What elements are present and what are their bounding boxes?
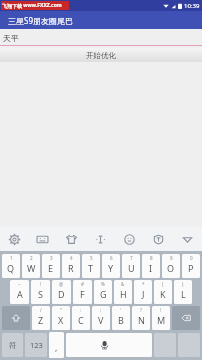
staticText: Q (7, 262, 15, 274)
staticText: 5 (90, 255, 93, 261)
button[interactable]: ! (152, 306, 170, 330)
staticText: ? (140, 307, 142, 313)
staticText: ( (162, 281, 164, 287)
button[interactable]: Emoji (115, 227, 144, 251)
staticText: F (80, 288, 85, 300)
button[interactable]: Theme (57, 227, 86, 251)
button[interactable]: % (94, 280, 112, 304)
button[interactable]: 123 (25, 333, 47, 357)
button[interactable]: ! (31, 280, 50, 304)
staticText: 0 (190, 255, 193, 261)
staticText: ~ (18, 281, 21, 287)
button[interactable]: ( (154, 280, 172, 304)
staticText: 开始优化 (86, 51, 116, 60)
staticText: & (121, 281, 125, 287)
staticText: U (128, 262, 135, 274)
button[interactable]: Cursor (86, 227, 115, 251)
button[interactable]: ~ (10, 280, 29, 304)
staticText: G (100, 288, 107, 300)
button[interactable]: # (73, 280, 92, 304)
button[interactable]: 7 (122, 254, 140, 278)
button[interactable]: Settings (0, 227, 28, 251)
staticText: X (58, 314, 64, 326)
button[interactable]: 开始优化 (0, 48, 202, 62)
button[interactable]: Shift (2, 306, 30, 330)
button[interactable]: 符 (2, 333, 23, 357)
button[interactable]: 2 (22, 254, 40, 278)
button[interactable]: ; (92, 306, 110, 330)
staticText: R (68, 262, 74, 274)
staticText: 8 (150, 255, 153, 261)
staticText: 2 (30, 255, 33, 261)
button[interactable]: , (49, 332, 64, 358)
button[interactable]: * (134, 280, 152, 304)
staticText: " (60, 307, 62, 313)
button[interactable]: 4 (62, 254, 80, 278)
staticText: ! (40, 281, 42, 287)
staticText: W (27, 262, 36, 274)
button[interactable]: 5 (82, 254, 100, 278)
button[interactable]: : (72, 306, 90, 330)
button[interactable]: ) (174, 280, 192, 304)
button[interactable]: @ (52, 280, 71, 304)
staticText: N (138, 314, 145, 326)
staticText: 三星S9朋友圈尾巴 (8, 15, 73, 26)
button[interactable]: ? (132, 306, 150, 330)
staticText: ; (100, 307, 102, 313)
button[interactable]: 1 (2, 254, 20, 278)
button[interactable]: 3 (42, 254, 60, 278)
button[interactable]: 8 (142, 254, 160, 278)
button[interactable]: Keyboard (28, 227, 57, 251)
staticText: * (142, 281, 145, 287)
staticText: ' (120, 307, 122, 313)
staticText: V (98, 314, 104, 326)
button[interactable]: Hide (173, 227, 202, 251)
button[interactable]: Space, voice input (66, 333, 152, 357)
staticText: E (48, 262, 54, 274)
staticText: L (181, 288, 186, 300)
staticText: K (160, 288, 166, 300)
button[interactable]: Backspace (172, 306, 200, 330)
staticText: H (120, 288, 127, 300)
button[interactable]: Translate (144, 227, 173, 251)
button[interactable]: 6 (102, 254, 120, 278)
staticText: 天平 (3, 33, 19, 43)
staticText: % (101, 281, 105, 287)
staticText: P (188, 262, 194, 274)
staticText: 6 (110, 255, 113, 261)
staticText: O (167, 262, 175, 274)
button[interactable]: 天平 (0, 31, 202, 45)
button[interactable]: 0 (182, 254, 200, 278)
staticText: 10:39 (184, 2, 200, 10)
staticText: @ (59, 281, 64, 287)
staticText: I (149, 262, 153, 274)
staticText: ) (182, 281, 184, 287)
staticText: 123 (30, 340, 43, 350)
button[interactable]: & (114, 280, 132, 304)
staticText: ! (160, 307, 162, 313)
staticText: 7 (130, 255, 133, 261)
staticText: www.FXXZ.com (22, 2, 62, 9)
staticText: D (58, 288, 65, 300)
staticText: : (80, 307, 82, 313)
staticText: 4 (70, 255, 73, 261)
staticText: B (118, 314, 124, 326)
staticText: J (142, 288, 145, 300)
staticText: C (78, 314, 84, 326)
staticText: , (55, 341, 58, 353)
staticText: 3 (50, 255, 53, 261)
staticText: Z (38, 314, 44, 326)
button[interactable]: 9 (162, 254, 180, 278)
staticText: / (40, 307, 42, 313)
staticText: 1 (10, 255, 13, 261)
button[interactable]: ' (112, 306, 130, 330)
staticText: Y (108, 262, 114, 274)
staticText: 符 (9, 341, 17, 350)
staticText: T (88, 262, 94, 274)
staticText: 9 (170, 255, 173, 261)
button[interactable]: / (32, 306, 50, 330)
button[interactable]: " (52, 306, 70, 330)
staticText: # (81, 281, 84, 287)
